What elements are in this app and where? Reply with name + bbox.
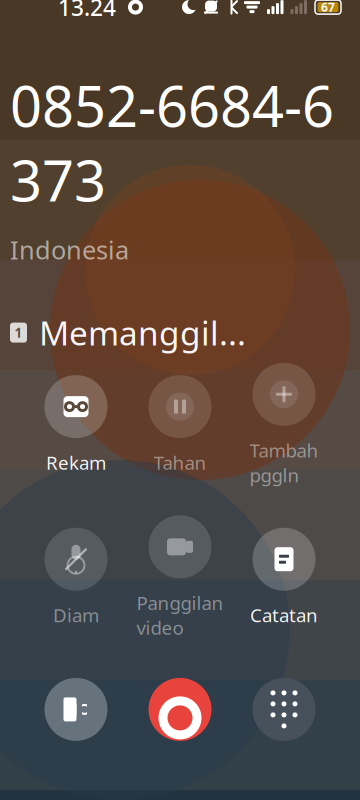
staticText: 0852-6684-6373 <box>10 68 334 217</box>
staticText: 67 <box>321 0 335 15</box>
button[interactable]: Rekam <box>24 375 128 475</box>
staticText: Panggilan video <box>136 590 223 640</box>
button[interactable]: Diam <box>24 528 128 627</box>
staticText: Tahan <box>153 450 206 475</box>
staticText: Tambah pggln <box>249 438 318 487</box>
button[interactable]: Panggilan video <box>128 515 232 640</box>
button[interactable]: Keypad <box>232 678 336 741</box>
staticText: Memanggil... <box>39 310 246 355</box>
staticText: Indonesia <box>10 233 129 266</box>
button[interactable]: End call <box>128 678 232 741</box>
staticText: Catatan <box>250 603 318 627</box>
staticText: Rekam <box>46 450 106 475</box>
button[interactable]: Catatan <box>232 528 336 627</box>
button[interactable]: Tahan <box>128 375 232 475</box>
staticText: Diam <box>53 603 99 627</box>
staticText: 1 <box>14 324 22 341</box>
button[interactable]: Tambah pggln <box>232 363 336 487</box>
button[interactable]: Speaker <box>24 678 128 741</box>
staticText: 13.24 <box>58 0 116 22</box>
